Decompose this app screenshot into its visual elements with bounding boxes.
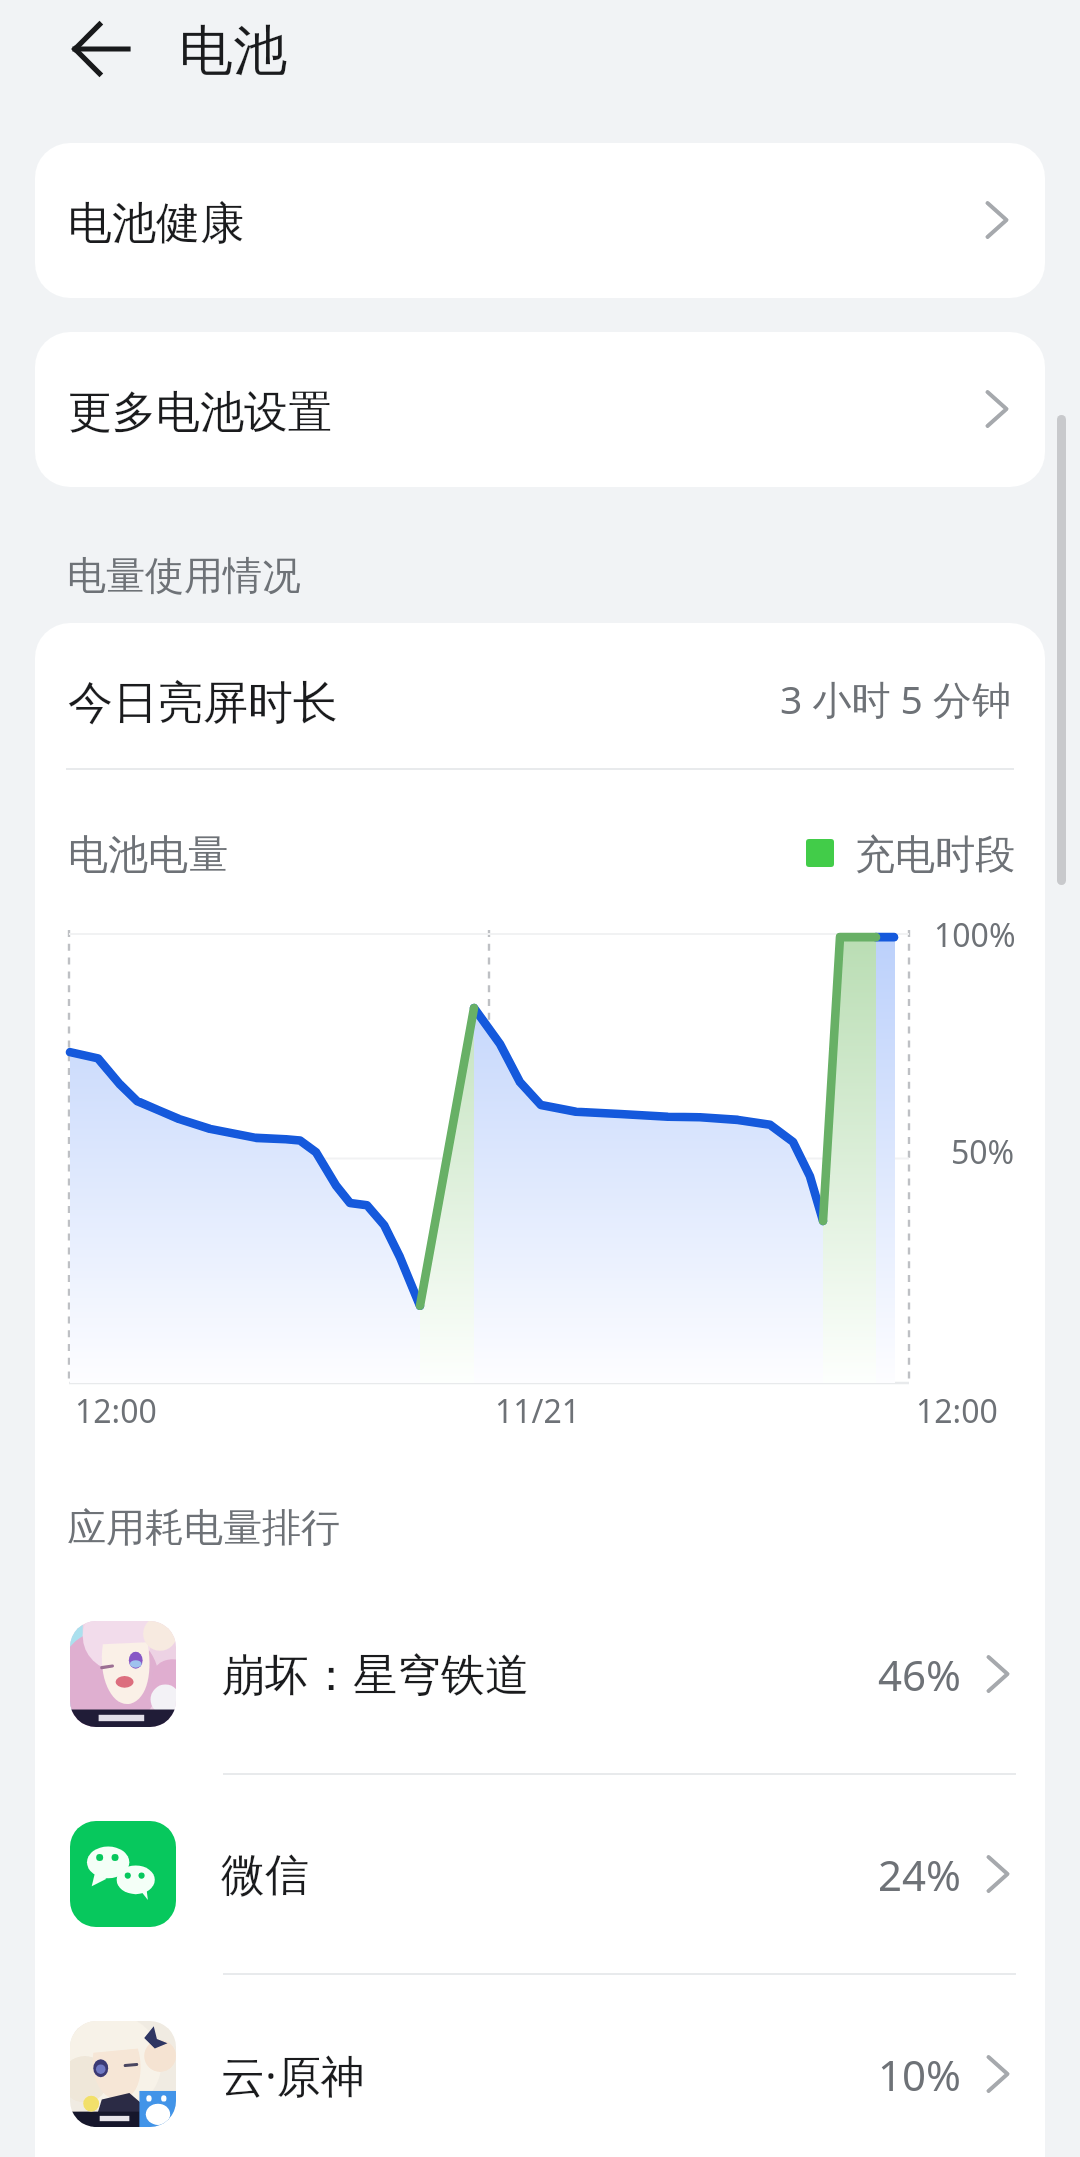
- staticText: 12:00: [916, 1389, 998, 1433]
- button[interactable]: 微信: [35, 1774, 1045, 1974]
- staticText: 电量使用情况: [67, 551, 301, 600]
- staticText: 3 小时 5 分钟: [780, 672, 1012, 725]
- staticText: 云·原神: [221, 2045, 365, 2105]
- button[interactable]: 崩坏：星穹铁道: [35, 1574, 1045, 1774]
- staticText: 更多电池设置: [68, 385, 332, 440]
- staticText: 今日亮屏时长: [68, 675, 338, 732]
- button[interactable]: 云·原神: [35, 1974, 1045, 2157]
- staticText: 11/21: [495, 1389, 581, 1433]
- staticText: 微信: [221, 1848, 309, 1903]
- staticText: 充电时段: [855, 829, 1015, 879]
- button[interactable]: 今日亮屏时长: [35, 623, 1045, 768]
- staticText: 12:00: [75, 1389, 157, 1433]
- staticText: 100%: [934, 913, 1016, 957]
- staticText: 电池健康: [68, 196, 244, 251]
- staticText: 应用耗电量排行: [67, 1503, 340, 1552]
- staticText: 24%: [878, 1846, 961, 1903]
- staticText: 电池电量: [68, 829, 228, 879]
- staticText: 46%: [878, 1646, 961, 1703]
- staticText: 10%: [878, 2046, 961, 2103]
- button[interactable]: 电池健康: [35, 143, 1045, 298]
- button[interactable]: Back: [56, 14, 146, 84]
- staticText: 崩坏：星穹铁道: [221, 1648, 529, 1703]
- staticText: 电池: [179, 17, 287, 85]
- button[interactable]: 更多电池设置: [35, 332, 1045, 487]
- staticText: 50%: [951, 1130, 1015, 1174]
